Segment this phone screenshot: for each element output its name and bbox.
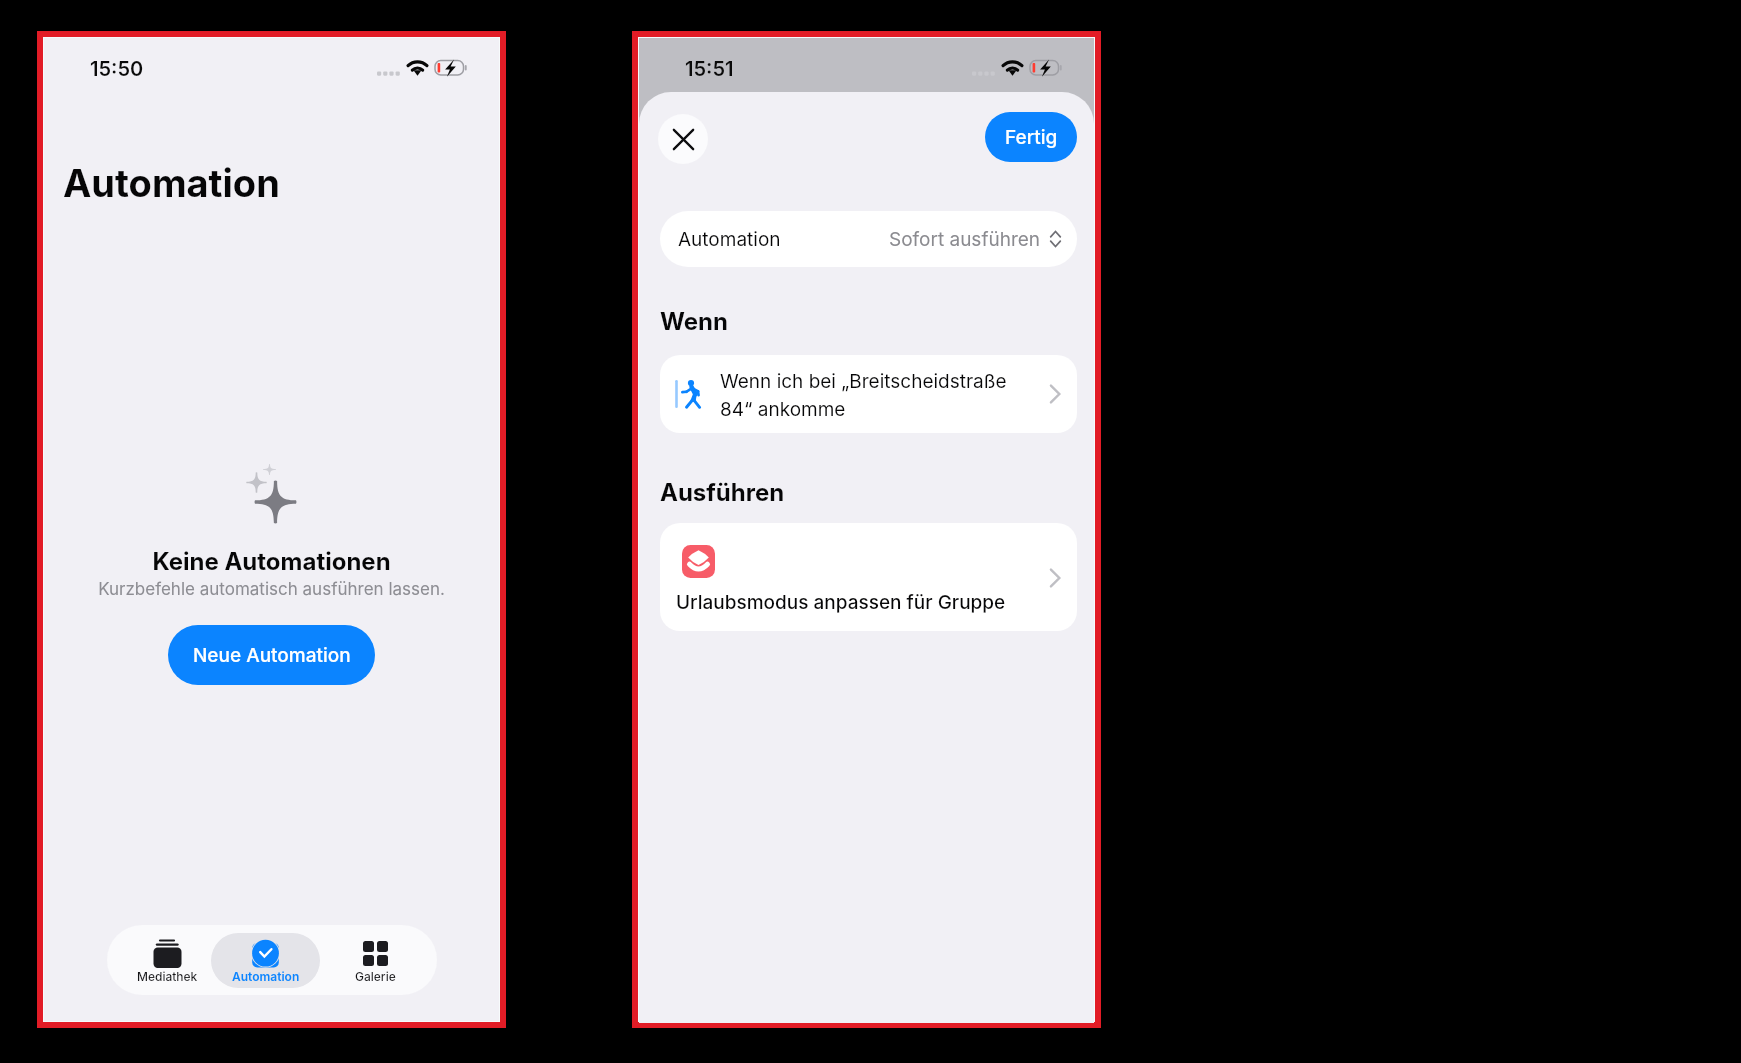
staticText: Mediathek — [137, 969, 198, 984]
staticText: Wenn — [660, 307, 728, 336]
staticText: Galerie — [355, 969, 396, 984]
staticText: Automation — [232, 969, 300, 984]
button[interactable]: Fertig — [985, 112, 1077, 162]
staticText: Fertig — [1005, 126, 1058, 149]
staticText: Kurzbefehle automatisch ausführen lassen… — [44, 579, 499, 600]
staticText: 15:51 — [685, 57, 734, 81]
staticText: Neue Automation — [193, 644, 351, 667]
button[interactable]: Automation — [211, 933, 320, 988]
staticText: Urlaubsmodus anpassen für Gruppe — [676, 591, 1006, 614]
button[interactable]: Urlaubsmodus anpassen für Gruppe — [660, 523, 1077, 631]
staticText: Sofort ausführen — [889, 228, 1041, 251]
staticText: Automation — [678, 228, 781, 251]
staticText: Ausführen — [660, 478, 785, 507]
button[interactable]: Mediathek — [115, 933, 219, 988]
button[interactable]: Wenn ich bei „Breitscheidstraße 84“ anko… — [660, 355, 1077, 433]
button[interactable]: Automation — [660, 211, 1077, 267]
staticText: Keine Automationen — [44, 547, 499, 576]
staticText: Automation — [63, 160, 280, 206]
button[interactable]: Neue Automation — [168, 625, 375, 685]
button[interactable]: Galerie — [323, 933, 427, 988]
staticText: 15:50 — [90, 57, 144, 81]
button[interactable]: Schließen — [658, 114, 708, 164]
staticText: Wenn ich bei „Breitscheidstraße 84“ anko… — [720, 370, 1007, 420]
